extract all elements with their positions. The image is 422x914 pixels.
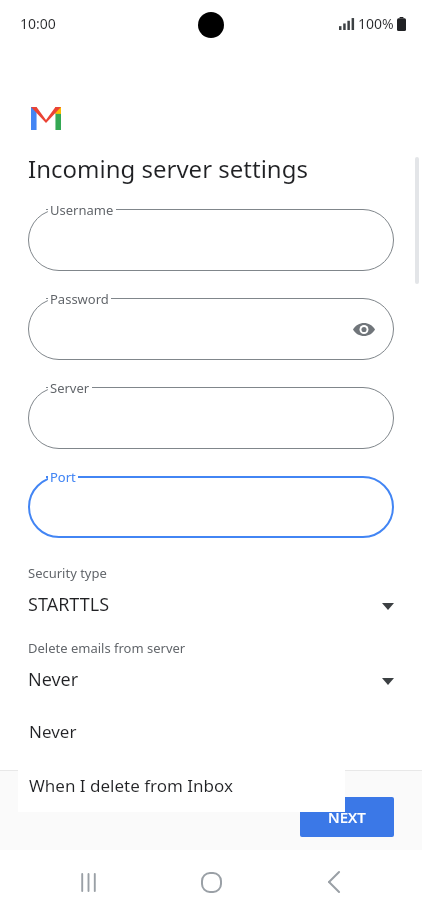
button[interactable]: Never [18,705,345,758]
staticText: STARTTLS [28,592,110,617]
staticText: Incoming server settings [28,152,308,185]
staticText: Port [50,468,76,486]
staticText: Server [50,379,90,397]
button[interactable]: Recent apps [64,858,112,906]
button[interactable]: Delete emails from server [0,639,422,692]
button[interactable]: Port [28,476,394,538]
staticText: Password [50,290,109,308]
button[interactable]: Home [187,858,235,906]
button[interactable]: Username [28,209,394,271]
staticText: Delete emails from server [28,639,186,657]
button[interactable]: Security type [0,564,422,617]
button[interactable]: Server [28,387,394,449]
staticText: Never [28,667,79,692]
staticText: When I delete from Inbox [29,774,233,797]
staticText: 10:00 [20,14,56,33]
staticText: 100% [358,14,394,33]
button[interactable]: Back [310,858,358,906]
staticText: Username [50,201,114,219]
button[interactable]: NEXT [300,797,394,837]
button[interactable]: Password [28,298,394,360]
staticText: Never [29,720,77,743]
button[interactable]: Show password [344,309,384,349]
staticText: Security type [28,564,107,582]
button[interactable]: When I delete from Inbox [18,758,345,812]
staticText: NEXT [328,807,366,827]
